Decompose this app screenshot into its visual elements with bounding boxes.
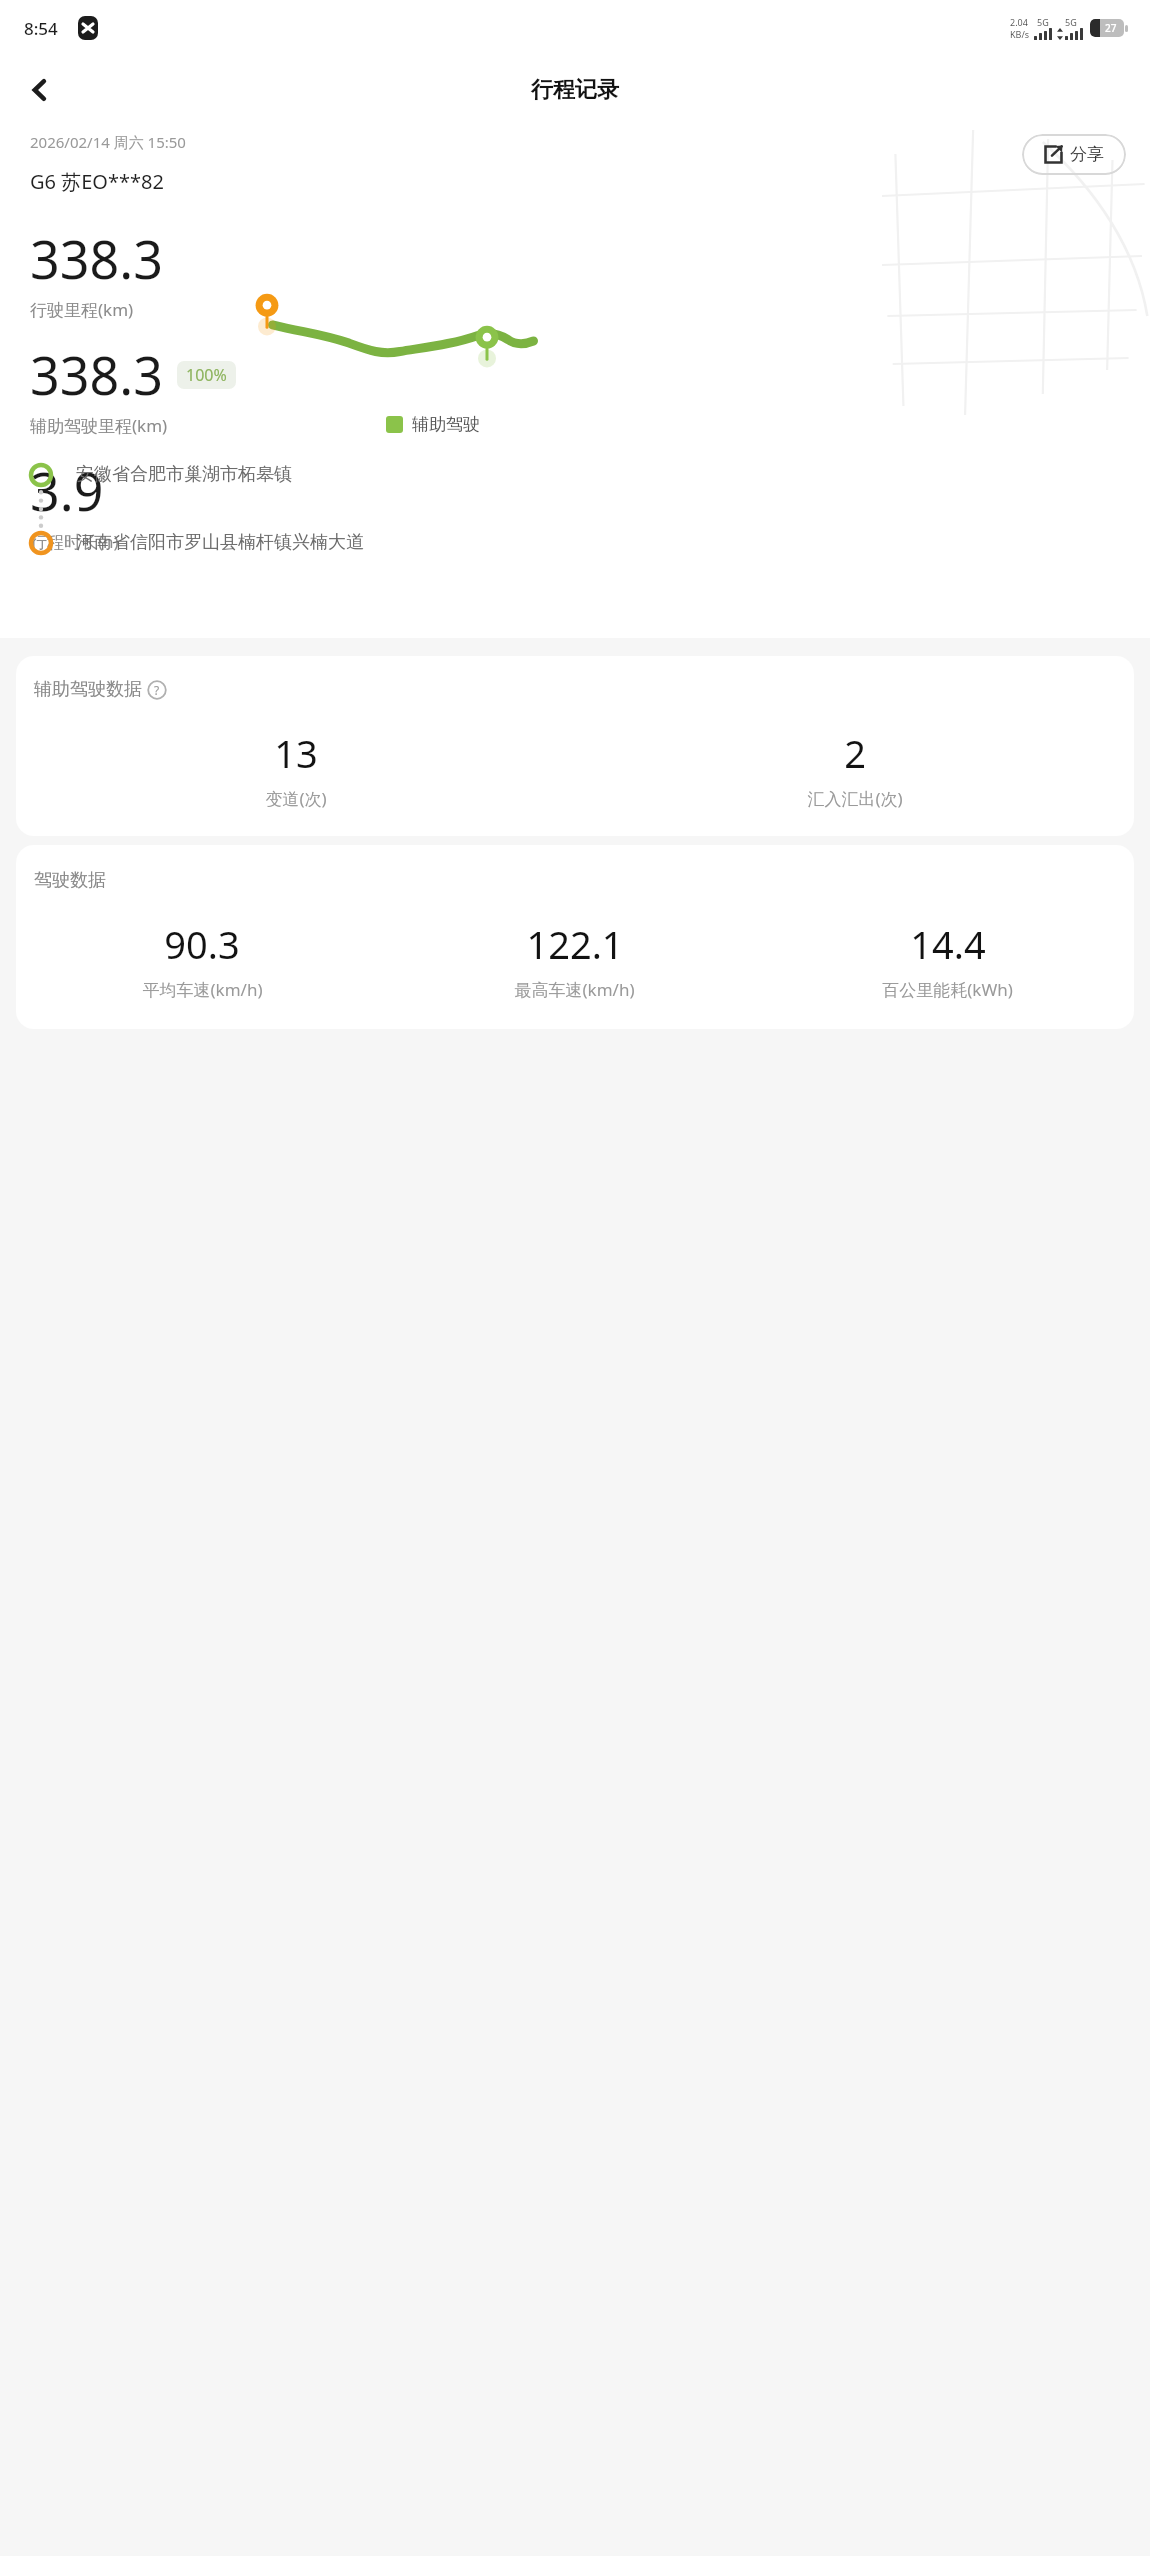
staticText: 100% (186, 364, 227, 386)
staticText: 行程时长(h) (30, 530, 119, 553)
staticText: 5G (1065, 16, 1077, 28)
staticText: 变道(次) (265, 787, 327, 810)
staticText: 河南省信阳市罗山县楠杆镇兴楠大道 (76, 531, 364, 554)
staticText: 平均车速(km/h) (142, 978, 263, 1001)
staticText: 8:54 (24, 17, 58, 40)
staticText: ? (154, 682, 160, 698)
staticText: 安徽省合肥市巢湖市柘皋镇 (76, 463, 292, 486)
staticText: 百公里能耗(kWh) (882, 978, 1013, 1001)
staticText: 行程记录 (531, 76, 619, 104)
staticText: 汇入汇出(次) (807, 787, 903, 810)
button[interactable]: 驾驶数据 (16, 845, 1134, 1029)
staticText: 最高车速(km/h) (514, 978, 635, 1001)
staticText: 2026/02/14 周六 15:50 (30, 132, 186, 152)
staticText: 338.3 (30, 339, 163, 410)
staticText: 辅助驾驶里程(km) (30, 414, 168, 437)
staticText: 分享 (1070, 144, 1104, 165)
staticText: 3.9 (30, 455, 104, 526)
button[interactable]: 分享 (1022, 134, 1126, 175)
staticText: 90.3 (164, 918, 240, 970)
staticText: 27 (1105, 21, 1117, 35)
staticText: 5G (1037, 16, 1049, 28)
staticText: 驾驶数据 (34, 869, 106, 892)
staticText: 2.04 (1010, 16, 1028, 28)
staticText: 13 (274, 727, 318, 779)
button[interactable]: Back (16, 66, 64, 114)
staticText: KB/s (1010, 28, 1030, 40)
button[interactable]: 辅助驾驶数据 (16, 656, 1134, 836)
staticText: 2 (844, 727, 866, 779)
staticText: 辅助驾驶数据 (34, 678, 142, 701)
staticText: 122.1 (526, 918, 624, 970)
staticText: 辅助驾驶 (412, 414, 480, 435)
staticText: G6 苏EO***82 (30, 168, 164, 195)
staticText: 14.4 (910, 918, 986, 970)
button[interactable]: Help (147, 680, 167, 700)
staticText: 行驶里程(km) (30, 298, 134, 321)
staticText: 338.3 (30, 223, 163, 294)
